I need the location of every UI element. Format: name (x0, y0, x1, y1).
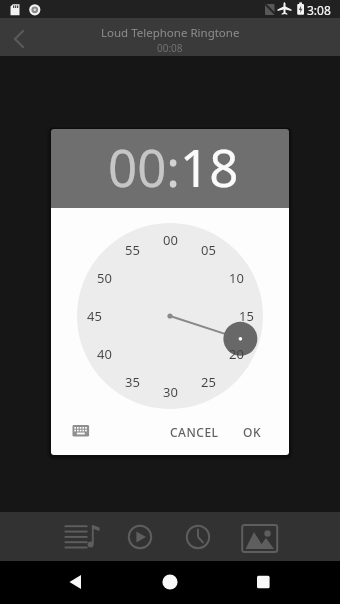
button[interactable]: 50 (89, 269, 119, 287)
staticText: 15 (239, 307, 254, 325)
button[interactable] (146, 561, 194, 604)
staticText: OK (243, 424, 261, 440)
button[interactable]: 00 (155, 231, 185, 249)
staticText: 35 (125, 373, 140, 391)
button[interactable]: 30 (155, 383, 185, 401)
staticText: 00:08 (157, 41, 183, 55)
button[interactable]: CANCEL (156, 414, 232, 450)
button[interactable]: 20 (221, 345, 251, 363)
staticText: 45 (87, 307, 102, 325)
button[interactable] (58, 513, 106, 561)
button[interactable] (51, 561, 99, 604)
staticText: 50 (97, 269, 112, 287)
button[interactable] (116, 513, 164, 561)
staticText: 05 (201, 241, 216, 259)
staticText: 10 (229, 269, 244, 287)
button[interactable] (69, 419, 93, 443)
button[interactable]: 15 (231, 307, 261, 325)
button[interactable]: 40 (89, 345, 119, 363)
staticText: 30 (163, 383, 178, 401)
button[interactable]: 35 (117, 373, 147, 391)
button[interactable] (235, 513, 283, 561)
staticText: 00 (163, 231, 178, 249)
staticText: 25 (201, 373, 216, 391)
button[interactable]: 55 (117, 241, 147, 259)
button[interactable]: 05 (193, 241, 223, 259)
staticText: 00:18 (108, 132, 239, 201)
button[interactable]: 00:18 (108, 132, 239, 201)
button[interactable]: 45 (79, 307, 109, 325)
button[interactable]: OK (230, 414, 274, 450)
staticText: 40 (97, 345, 112, 363)
button[interactable] (174, 513, 222, 561)
staticText: 20 (229, 345, 244, 363)
staticText: CANCEL (170, 424, 219, 440)
button[interactable] (241, 561, 289, 604)
button[interactable] (2, 22, 38, 55)
staticText: 3:08 (307, 2, 331, 18)
button[interactable]: 10 (221, 269, 251, 287)
button[interactable]: 25 (193, 373, 223, 391)
staticText: 55 (125, 241, 140, 259)
staticText: Loud Telephone Ringtone (101, 25, 240, 41)
